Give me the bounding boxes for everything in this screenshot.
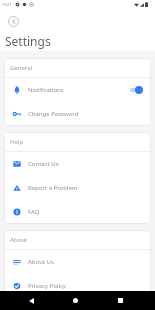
staticText: Report a Problem	[28, 184, 78, 192]
staticText: Change Password	[28, 110, 79, 118]
button[interactable]: Recents	[111, 291, 130, 310]
staticText: Help	[10, 138, 24, 146]
staticText: FAQ	[28, 208, 40, 216]
staticText: Privacy Policy	[28, 282, 66, 290]
staticText: About	[10, 236, 28, 244]
staticText: Contact Us	[28, 160, 59, 168]
staticText: 11:21	[2, 2, 12, 7]
button[interactable]: Back	[22, 291, 41, 310]
staticText: Settings	[5, 33, 51, 49]
button[interactable]: Contact Us	[4, 152, 151, 176]
staticText: General	[10, 64, 33, 72]
button[interactable]: Home	[66, 291, 85, 310]
button[interactable]: About Us	[4, 250, 151, 274]
button[interactable]: Change Password	[4, 102, 151, 126]
staticText: Notifications	[28, 86, 64, 94]
button[interactable]: Back	[8, 16, 19, 27]
button[interactable]: FAQ	[4, 200, 151, 224]
staticText: About Us	[28, 258, 54, 266]
button[interactable]: Notifications	[4, 78, 151, 102]
button[interactable]: Privacy Policy	[4, 274, 151, 298]
button[interactable]: Report a Problem	[4, 176, 151, 200]
